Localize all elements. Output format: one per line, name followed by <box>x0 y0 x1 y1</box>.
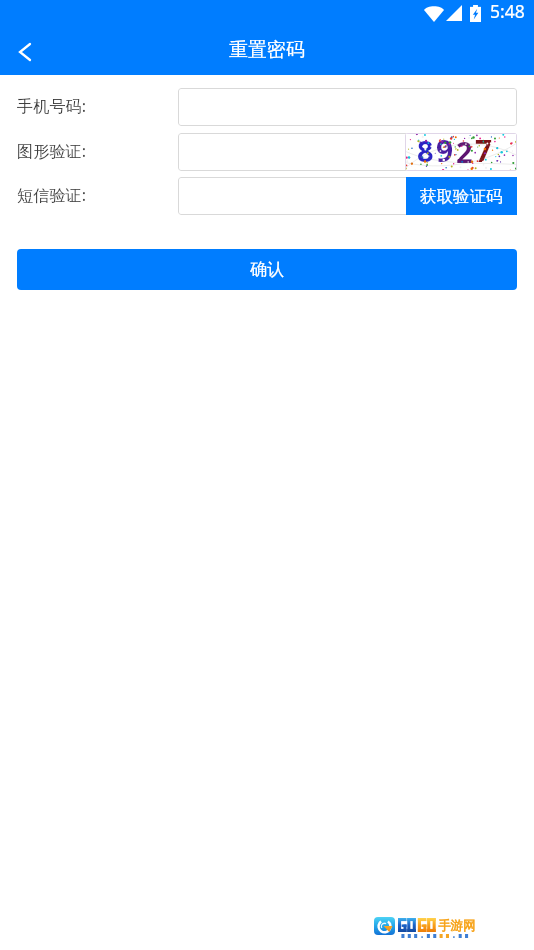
staticText: 9 <box>436 133 454 168</box>
button[interactable]: Input field <box>178 133 517 171</box>
staticText: 获取验证码 <box>420 186 503 207</box>
staticText: 图形验证: <box>17 140 87 162</box>
staticText: 手机号码: <box>17 95 87 117</box>
staticText: 手游网 <box>438 918 476 934</box>
staticText: 8 <box>417 133 434 169</box>
button[interactable]: 获取验证码 <box>406 177 517 215</box>
button[interactable]: Input field <box>178 177 517 215</box>
button[interactable]: Back <box>4 31 45 72</box>
button[interactable]: Refresh captcha <box>405 133 517 171</box>
staticText: 确认 <box>250 259 284 280</box>
button[interactable]: 确认 <box>17 249 517 290</box>
button[interactable]: Input field <box>178 88 517 126</box>
staticText: 短信验证: <box>17 184 87 206</box>
button[interactable]: GOGO 手游网 www.gogo.cn <box>374 917 473 939</box>
staticText: 2 <box>456 133 473 170</box>
staticText: 重置密码 <box>229 38 305 62</box>
staticText: 5:48 <box>490 0 525 23</box>
staticText: 7 <box>475 133 493 168</box>
